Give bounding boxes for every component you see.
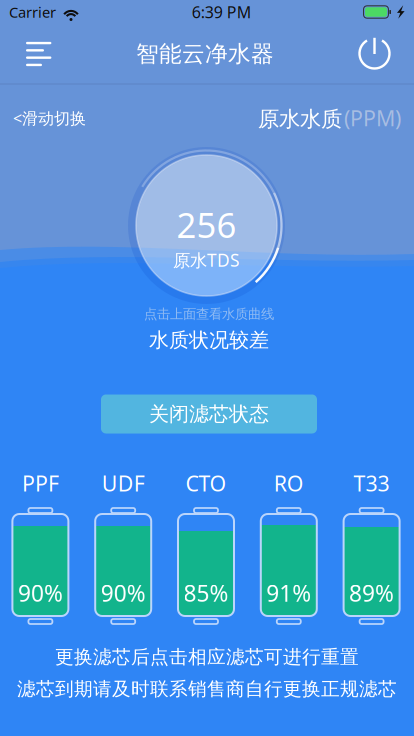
button[interactable]: UDF <box>82 465 165 627</box>
staticText: 更换滤芯后点击相应滤芯可进行重置 <box>55 645 359 668</box>
staticText: 90% <box>18 578 63 608</box>
staticText: 91% <box>266 578 311 608</box>
staticText: 90% <box>101 578 146 608</box>
button[interactable]: CTO <box>165 465 247 627</box>
staticText: Carrier <box>9 2 56 22</box>
staticText: PPF <box>22 469 59 497</box>
button[interactable]: T33 <box>330 465 413 627</box>
staticText: 水质状况较差 <box>149 328 269 352</box>
staticText: 89% <box>349 578 394 608</box>
staticText: 滤芯到期请及时联系销售商自行更换正规滤芯 <box>17 677 397 700</box>
staticText: <滑动切换 <box>13 107 86 129</box>
button[interactable]: <滑动切换 <box>13 107 86 129</box>
button[interactable]: RO <box>247 465 330 627</box>
staticText: UDF <box>102 469 145 497</box>
staticText: 6:39 PM <box>192 1 252 23</box>
button[interactable]: PPF <box>0 465 82 627</box>
staticText: 原水水质 <box>258 106 342 132</box>
staticText: T33 <box>354 469 390 497</box>
button[interactable]: Menu <box>26 36 52 72</box>
staticText: 256 <box>176 201 236 247</box>
staticText: CTO <box>185 469 226 497</box>
staticText: 关闭滤芯状态 <box>149 402 269 426</box>
button[interactable]: Power <box>358 36 392 72</box>
staticText: RO <box>274 469 304 497</box>
button[interactable]: 关闭滤芯状态 <box>101 394 317 433</box>
staticText: (PPM) <box>344 104 401 132</box>
staticText: 原水TDS <box>173 248 240 271</box>
staticText: 智能云净水器 <box>136 40 274 68</box>
staticText: 点击上面查看水质曲线 <box>144 306 274 322</box>
staticText: 85% <box>183 578 228 608</box>
